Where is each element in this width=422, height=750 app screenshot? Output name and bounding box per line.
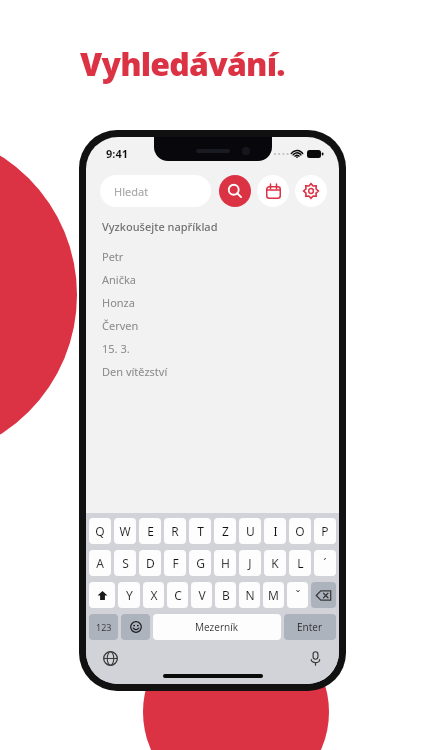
staticText: 15. 3. (102, 341, 130, 356)
button[interactable]: Z (214, 518, 236, 544)
button[interactable]: C (167, 582, 188, 608)
staticText: D (146, 555, 155, 571)
button[interactable]: P (314, 518, 336, 544)
button[interactable]: Anička (102, 268, 339, 291)
staticText: I (273, 523, 278, 539)
staticText: C (174, 587, 182, 603)
button[interactable]: Q (89, 518, 111, 544)
staticText: Z (222, 523, 229, 539)
staticText: V (198, 587, 206, 603)
staticText: N (245, 587, 255, 603)
button[interactable]: ´ (314, 550, 336, 576)
staticText: E (147, 523, 154, 539)
button[interactable]: Y (118, 582, 140, 608)
staticText: X (150, 587, 158, 603)
staticText: H (221, 555, 230, 571)
button[interactable]: Petr (102, 245, 339, 268)
button[interactable]: X (143, 582, 164, 608)
button[interactable]: 123 (89, 614, 118, 640)
button[interactable]: Změnit jazyk (98, 646, 122, 670)
button[interactable]: Honza (102, 291, 339, 314)
staticText: ´ (323, 555, 327, 571)
button[interactable]: T (189, 518, 211, 544)
staticText: U (246, 523, 255, 539)
button[interactable]: D (139, 550, 161, 576)
staticText: Mezerník (195, 620, 239, 634)
staticText: K (271, 555, 279, 571)
button[interactable]: F (164, 550, 186, 576)
button[interactable]: Diktovat (303, 646, 327, 670)
staticText: P (321, 523, 329, 539)
staticText: ˇ (295, 587, 301, 603)
staticText: Den vítězství (102, 364, 168, 379)
staticText: Enter (297, 620, 323, 634)
button[interactable]: V (191, 582, 212, 608)
button[interactable]: B (215, 582, 236, 608)
button[interactable]: Červen (102, 314, 339, 337)
staticText: M (268, 587, 279, 603)
button[interactable]: Hledat (100, 175, 211, 207)
button[interactable]: Emoji (121, 614, 150, 640)
staticText: Červen (102, 318, 139, 333)
button[interactable]: O (289, 518, 311, 544)
staticText: W (119, 523, 131, 539)
button[interactable]: ˇ (287, 582, 308, 608)
button[interactable]: M (263, 582, 284, 608)
button[interactable]: U (239, 518, 261, 544)
button[interactable]: L (289, 550, 311, 576)
staticText: Petr (102, 249, 124, 264)
button[interactable]: 15. 3. (102, 337, 339, 360)
staticText: R (171, 523, 179, 539)
button[interactable]: Mezerník (153, 614, 281, 640)
staticText: Vyhledávání. (80, 42, 285, 86)
staticText: F (172, 555, 179, 571)
button[interactable]: N (239, 582, 260, 608)
staticText: Anička (102, 272, 136, 287)
staticText: Honza (102, 295, 135, 310)
staticText: O (295, 523, 305, 539)
staticText: S (122, 555, 129, 571)
staticText: 9:41 (106, 146, 128, 161)
button[interactable]: Enter (284, 614, 336, 640)
button[interactable]: Hledat (219, 175, 251, 207)
button[interactable]: W (114, 518, 136, 544)
staticText: B (222, 587, 230, 603)
staticText: T (197, 523, 204, 539)
staticText: J (248, 555, 252, 571)
staticText: 123 (96, 621, 112, 633)
button[interactable]: R (164, 518, 186, 544)
button[interactable]: H (214, 550, 236, 576)
button[interactable]: Smazat (311, 582, 336, 608)
staticText: Q (95, 523, 105, 539)
button[interactable]: Kalendář (257, 175, 289, 207)
button[interactable]: Den vítězství (102, 360, 339, 383)
button[interactable]: A (89, 550, 111, 576)
staticText: A (96, 555, 104, 571)
button[interactable]: S (114, 550, 136, 576)
button[interactable]: J (239, 550, 261, 576)
staticText: G (196, 555, 205, 571)
button[interactable]: I (264, 518, 286, 544)
staticText: Y (126, 587, 133, 603)
button[interactable]: K (264, 550, 286, 576)
staticText: Vyzkoušejte například (102, 219, 218, 234)
button[interactable]: Nastavení (295, 175, 327, 207)
staticText: Hledat (114, 184, 149, 199)
staticText: L (297, 555, 304, 571)
button[interactable]: E (139, 518, 161, 544)
button[interactable]: G (189, 550, 211, 576)
button[interactable]: Shift (89, 582, 115, 608)
